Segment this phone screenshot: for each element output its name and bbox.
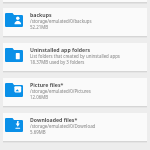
staticText: 12.06MB — [30, 94, 49, 100]
staticText: /storage/emulated/0/Download — [30, 123, 96, 129]
staticText: 5.69MB — [30, 129, 46, 135]
staticText: List folders that created by uninstalled… — [30, 53, 120, 59]
staticText: Downloaded files* — [30, 116, 78, 123]
staticText: /storage/emulated/0/backups — [30, 18, 92, 24]
button[interactable]: backups — [3, 8, 147, 36]
button[interactable]: Picture files* — [3, 78, 147, 106]
button[interactable]: Uninstalled app folders — [3, 43, 147, 71]
staticText: /storage/emulated/0/Pictures — [30, 88, 91, 94]
button[interactable]: Downloaded files* — [3, 113, 147, 141]
staticText: Uninstalled app folders — [30, 46, 91, 53]
staticText: backups — [30, 11, 52, 18]
staticText: 52.21MB — [30, 24, 49, 30]
staticText: Picture files* — [30, 81, 64, 88]
staticText: 18.37MB used by 3 folders — [30, 59, 85, 65]
